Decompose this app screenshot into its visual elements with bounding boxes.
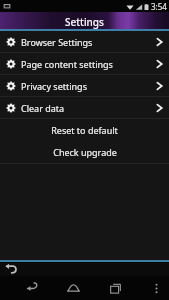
staticText: Page content settings — [21, 58, 113, 70]
button[interactable]: Recent apps — [105, 278, 125, 298]
staticText: 3:54 — [151, 1, 167, 12]
button[interactable]: Page content settings — [0, 53, 169, 75]
button[interactable]: Browser Settings — [0, 31, 169, 53]
staticText: Browser Settings — [21, 36, 93, 48]
button[interactable]: More options — [147, 279, 165, 297]
button[interactable]: Privacy settings — [0, 75, 169, 97]
button[interactable]: Back — [4, 262, 18, 276]
staticText: Reset to default — [51, 124, 118, 136]
staticText: Clear data — [21, 102, 65, 114]
button[interactable]: Check upgrade — [0, 141, 169, 163]
staticText: Check upgrade — [53, 146, 117, 158]
button[interactable]: Back — [22, 278, 42, 298]
staticText: Privacy settings — [21, 80, 87, 92]
staticText: Settings — [65, 15, 104, 29]
button[interactable]: Reset to default — [0, 119, 169, 141]
button[interactable]: Home — [63, 278, 83, 298]
button[interactable]: Clear data — [0, 97, 169, 119]
